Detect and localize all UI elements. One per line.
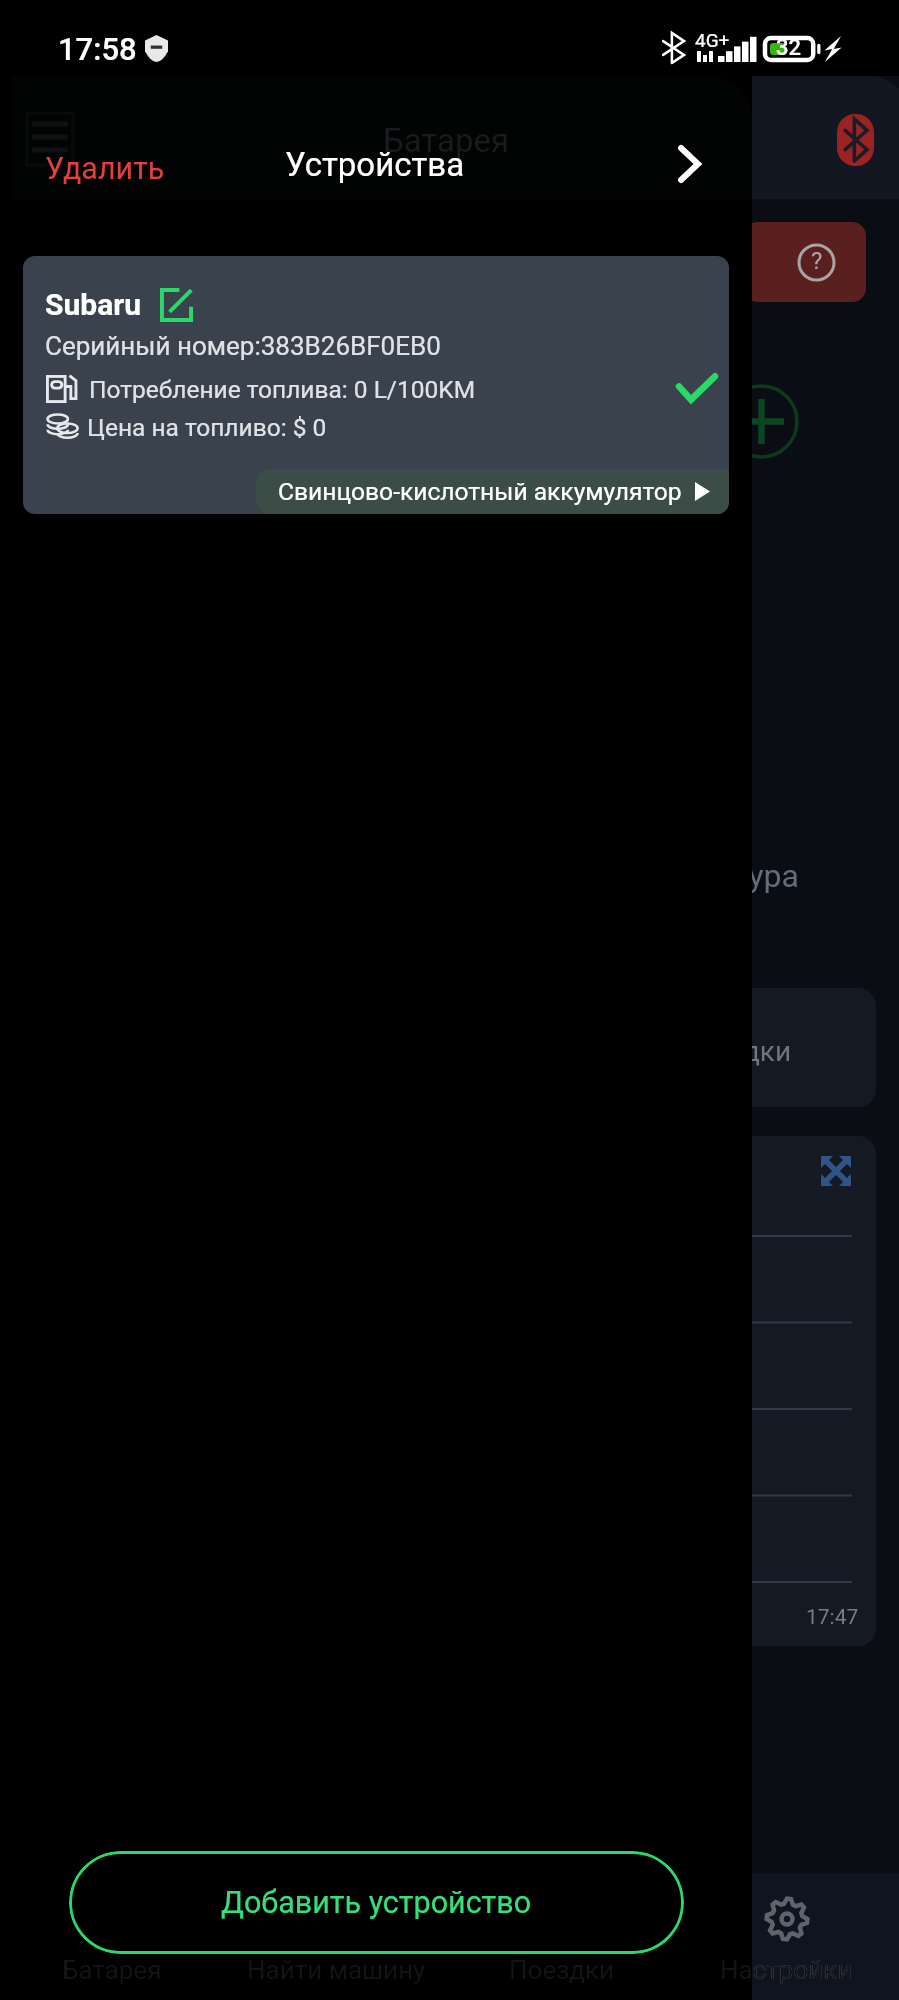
- staticText: Найти машину: [247, 1955, 426, 1985]
- button[interactable]: Удалить: [35, 147, 175, 191]
- staticText: Найти машину: [247, 1955, 426, 1985]
- staticText: Потребление топлива: 0 L/100KM: [89, 375, 476, 404]
- button[interactable]: Edit: [159, 288, 193, 322]
- button[interactable]: Поездки: [449, 1873, 674, 2000]
- button[interactable]: Свинцово-кислотный аккумулятор: [256, 469, 729, 514]
- button[interactable]: Настройки: [674, 1873, 899, 2000]
- staticText: ?: [811, 247, 823, 275]
- staticText: Батарея: [383, 121, 510, 160]
- staticText: Температура: [604, 857, 799, 895]
- button[interactable]: Subaru: [23, 256, 729, 514]
- staticText: Свинцово-кислотный аккумулятор: [278, 477, 682, 506]
- staticText: 17:58: [58, 31, 137, 67]
- staticText: Удалить: [45, 151, 165, 187]
- staticText: Зарядки: [680, 1035, 792, 1068]
- staticText: 17:47: [806, 1605, 859, 1630]
- staticText: Цена на топливо: $ 0: [87, 413, 327, 442]
- staticText: 32: [776, 35, 802, 61]
- staticText: Серийный номер:383B26BF0EB0: [45, 331, 441, 361]
- staticText: 4G+: [695, 29, 730, 51]
- button[interactable]: Selected: [663, 354, 729, 422]
- staticText: Настройки: [720, 1955, 853, 1985]
- staticText: Батарея: [62, 1955, 162, 1985]
- button[interactable]: Bluetooth: [837, 114, 874, 166]
- button[interactable]: Зарядки: [556, 988, 876, 1107]
- button[interactable]: Help: [744, 222, 866, 302]
- staticText: Subaru: [45, 287, 141, 322]
- button[interactable]: Next: [658, 133, 720, 195]
- staticText: Поездки: [509, 1955, 615, 1985]
- button[interactable]: Батарея: [0, 1873, 224, 2000]
- staticText: Добавить устройство: [221, 1885, 532, 1921]
- staticText: Настройки: [720, 1955, 853, 1985]
- staticText: Батарея: [62, 1955, 162, 1985]
- staticText: Устройства: [285, 145, 465, 184]
- button[interactable]: Добавить устройство: [69, 1851, 684, 1954]
- button[interactable]: Найти машину: [224, 1873, 449, 2000]
- button[interactable]: 17:47: [556, 1136, 876, 1646]
- staticText: Поездки: [509, 1955, 615, 1985]
